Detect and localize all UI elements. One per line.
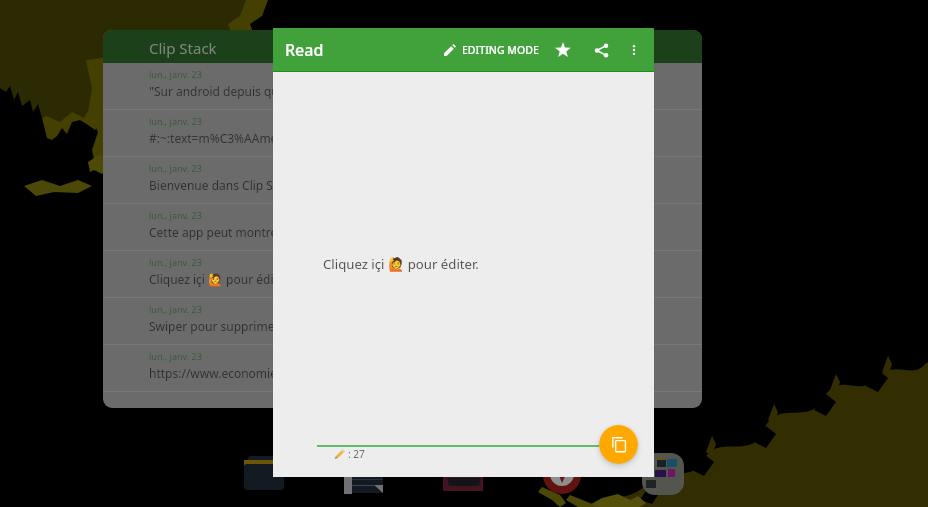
staticText: "Sur android depuis que xyxy=(149,83,286,99)
staticText: lun., janv. 23 xyxy=(149,209,202,221)
staticText: Bienvenue dans Clip Sta xyxy=(149,177,284,193)
staticText: Cliquez içi 🙋 pour éditer. xyxy=(323,255,479,273)
button[interactable]: Favorite xyxy=(545,28,581,72)
staticText: Read xyxy=(285,39,324,61)
button[interactable]: Share xyxy=(583,28,619,72)
staticText: lun., janv. 23 xyxy=(149,303,202,315)
staticText: lun., janv. 23 xyxy=(149,256,202,268)
button[interactable]: EDITING MODE xyxy=(438,28,545,72)
button[interactable]: More options xyxy=(617,28,651,72)
staticText: lun., janv. 23 xyxy=(149,350,202,362)
staticText: https://www.economie. xyxy=(149,365,281,381)
staticText: Cliquez içi 🙋 pour éditer xyxy=(149,271,290,287)
staticText: : 27 xyxy=(348,447,365,461)
staticText: Clip Stack xyxy=(149,38,217,58)
staticText: Swiper pour supprimer. xyxy=(149,318,281,334)
button[interactable]: Copy xyxy=(599,425,638,464)
staticText: Cette app peut montrer xyxy=(149,224,283,240)
staticText: #:~:text=m%C3%AAme xyxy=(149,130,278,146)
staticText: lun., janv. 23 xyxy=(149,68,202,80)
staticText: EDITING MODE xyxy=(462,43,539,57)
staticText: lun., janv. 23 xyxy=(149,162,202,174)
staticText: lun., janv. 23 xyxy=(149,115,202,127)
